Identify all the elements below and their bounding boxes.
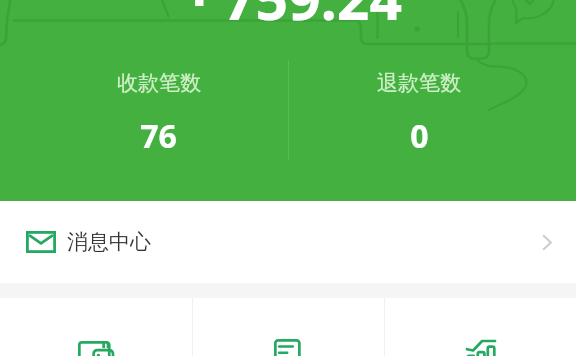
staticText: 0	[410, 114, 429, 158]
staticText: 退款笔数	[377, 70, 461, 96]
button[interactable]: 消息中心	[0, 201, 576, 283]
staticText: ¥	[183, 0, 216, 23]
button[interactable]: Statistics	[385, 298, 576, 356]
button[interactable]: POS payment	[0, 298, 192, 356]
staticText: 759.24	[223, 0, 403, 37]
button[interactable]: Bills	[193, 298, 384, 356]
staticText: 收款笔数	[117, 70, 201, 96]
staticText: 76	[140, 114, 177, 158]
staticText: 消息中心	[67, 229, 151, 255]
